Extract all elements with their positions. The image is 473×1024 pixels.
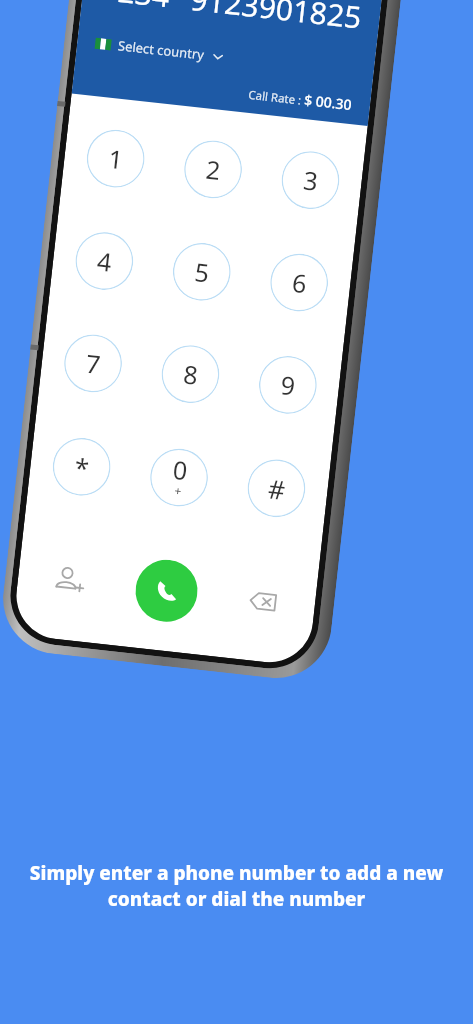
button[interactable]: Backspace [232,570,296,634]
staticText: +234 [99,0,172,16]
staticText: 9 [279,367,298,403]
staticText: 3 [302,162,320,198]
staticText: Call Rate : [248,87,305,109]
staticText: + [174,482,182,499]
button[interactable]: 4 [72,229,136,293]
button[interactable]: 5 [170,240,234,304]
button[interactable]: Select country [94,34,224,66]
button[interactable]: Add contact [37,548,101,612]
staticText: * [73,449,91,485]
staticText: # [266,470,287,507]
staticText: 2 [204,152,223,187]
button[interactable]: Call [132,557,201,625]
staticText: 7 [84,346,103,381]
button[interactable]: 0 [147,445,211,509]
staticText: $ 00.30 [303,90,353,114]
button[interactable]: * [50,435,114,499]
staticText: 9123901825 [188,0,364,38]
staticText: 4 [95,243,114,279]
button[interactable]: 3 [278,148,342,212]
staticText: 8 [182,356,200,392]
button[interactable]: 9 [256,353,320,417]
button[interactable]: 1 [84,127,148,191]
button[interactable]: # [244,456,308,520]
button[interactable]: 7 [61,331,125,395]
staticText: 5 [193,254,212,289]
staticText: 0 [171,452,190,487]
staticText: Simply enter a phone number to add a new… [0,860,473,912]
button[interactable]: 8 [158,342,222,406]
staticText: Select country [117,36,205,64]
button[interactable]: 2 [181,137,245,201]
staticText: 6 [290,265,309,300]
button[interactable]: 6 [267,250,331,314]
staticText: 1 [107,141,125,176]
